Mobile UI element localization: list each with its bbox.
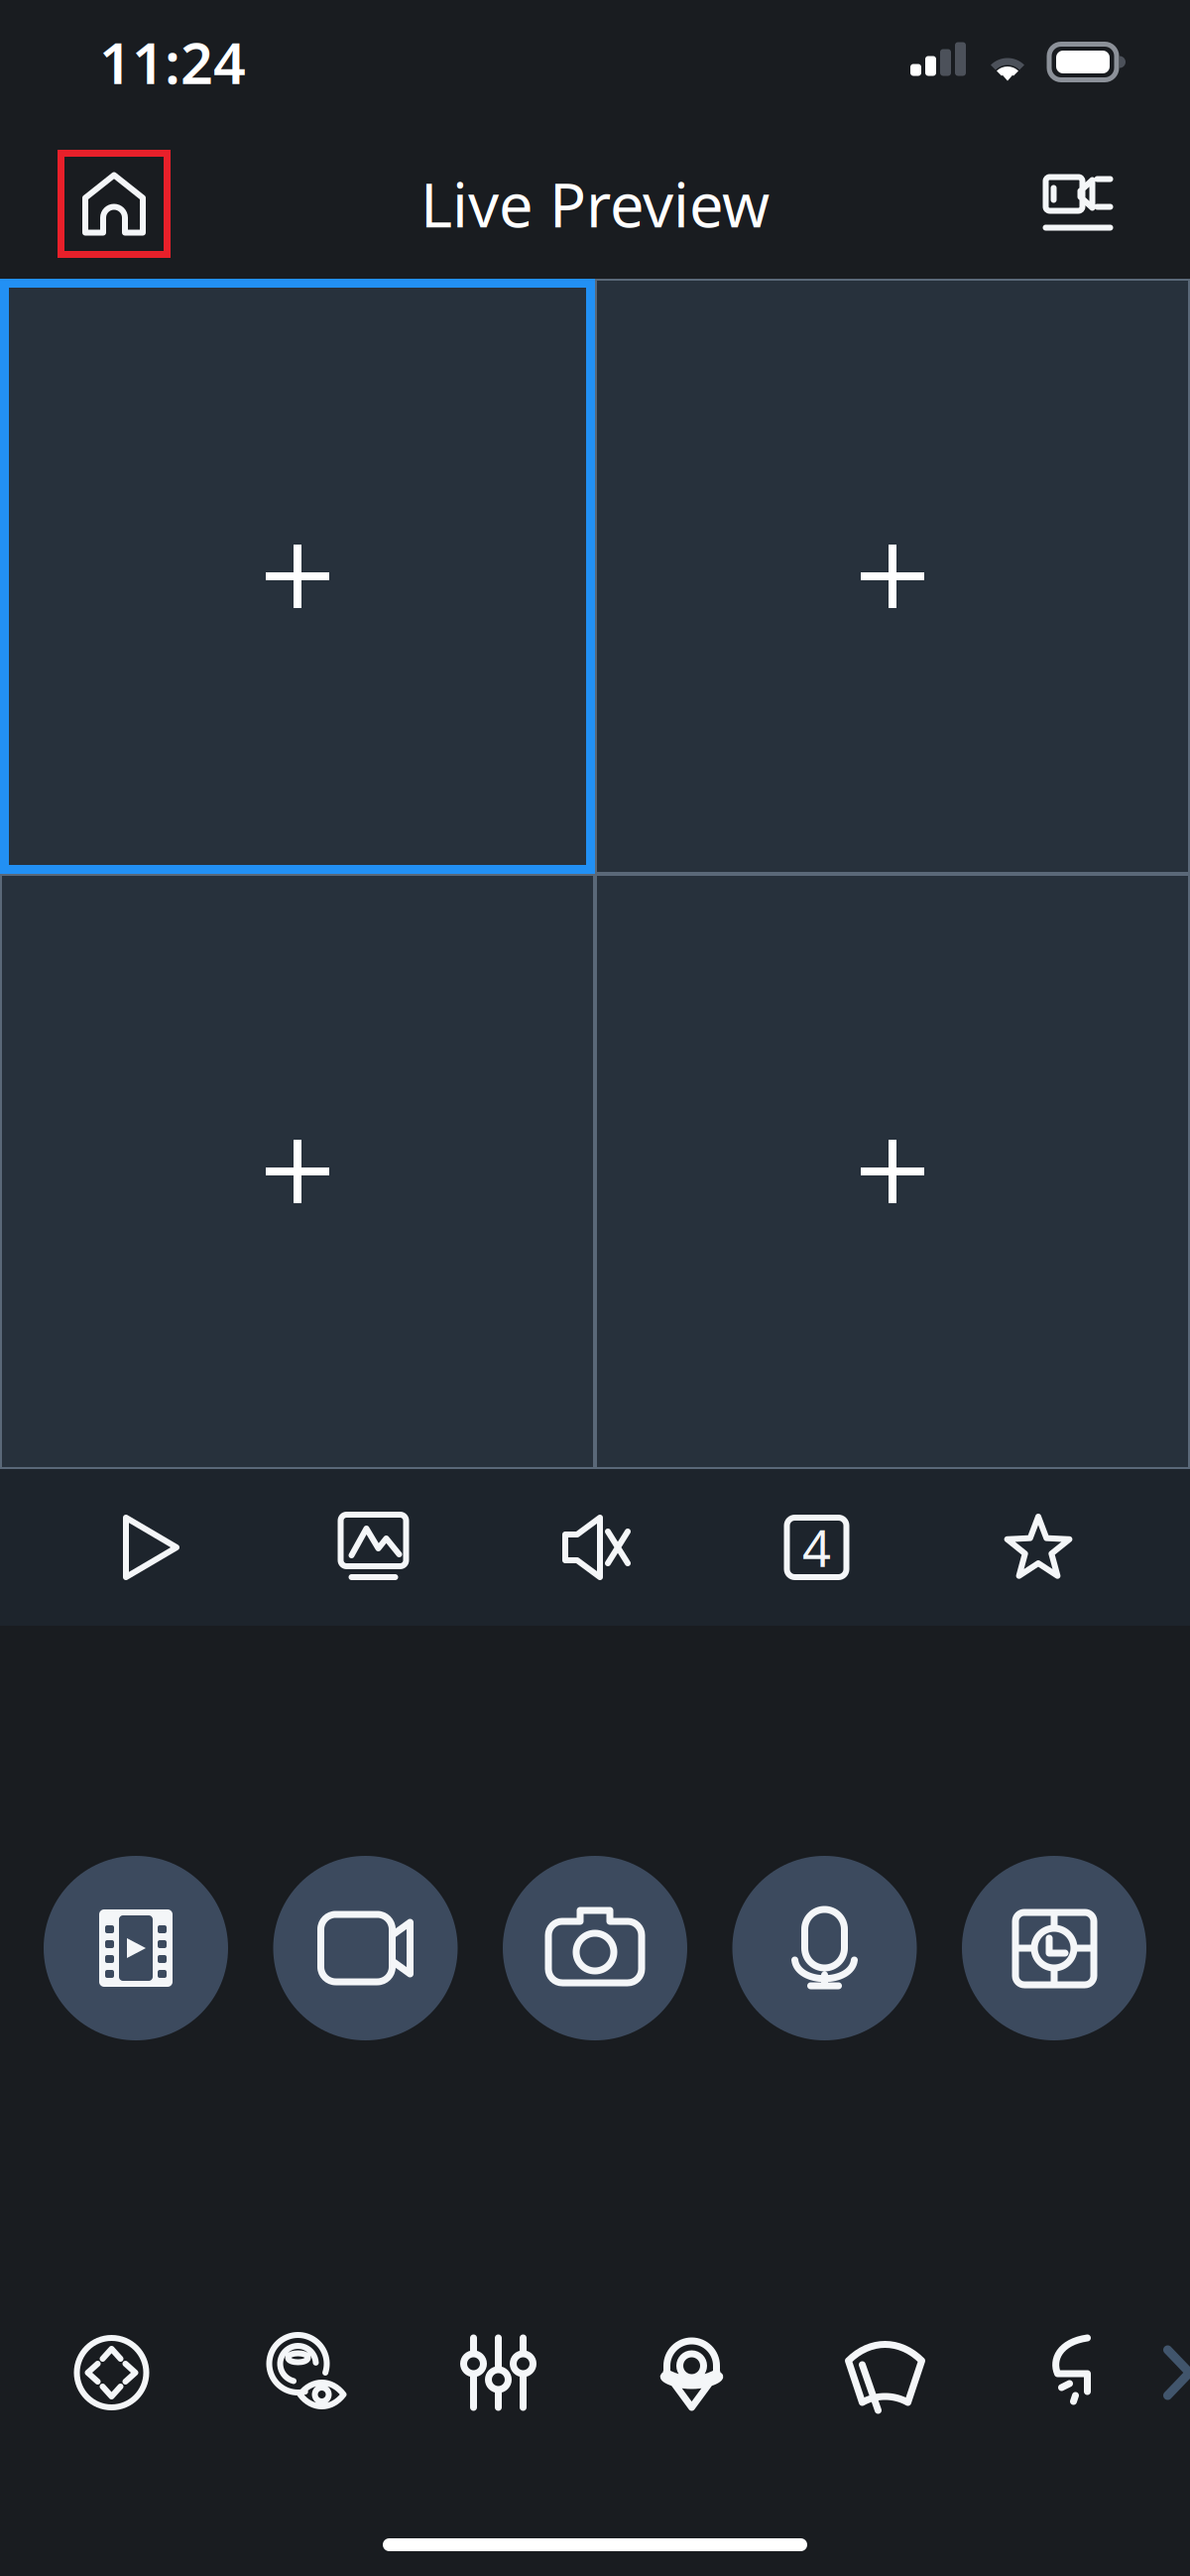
button[interactable]: Camera list	[1023, 150, 1132, 258]
button[interactable]: Image quality	[299, 1469, 448, 1626]
button[interactable]: Mute	[521, 1469, 669, 1626]
button[interactable]: Preset	[617, 2318, 766, 2427]
button[interactable]: Timeline	[962, 1856, 1146, 2040]
button[interactable]: Add camera	[0, 874, 595, 1469]
staticText: 11:24	[99, 24, 246, 100]
button[interactable]: Layout 4	[742, 1469, 891, 1626]
button[interactable]: Talk	[732, 1856, 917, 2040]
button[interactable]: More tools	[1146, 2318, 1190, 2427]
button[interactable]: Recordings	[44, 1856, 228, 2040]
button[interactable]: Video	[273, 1856, 458, 2040]
button[interactable]: Add camera	[595, 279, 1190, 874]
button[interactable]: Add camera	[0, 279, 595, 874]
button[interactable]: Play	[77, 1469, 226, 1626]
staticText: Live Preview	[420, 163, 770, 244]
button[interactable]: Snapshot	[503, 1856, 687, 2040]
button[interactable]: PTZ control	[37, 2318, 186, 2427]
button[interactable]: Favourite	[964, 1469, 1113, 1626]
button[interactable]: Privacy mask	[231, 2318, 379, 2427]
button[interactable]: Image settings	[424, 2318, 573, 2427]
button[interactable]: Add camera	[595, 874, 1190, 1469]
button[interactable]: Wiper	[811, 2318, 959, 2427]
staticText: 4	[802, 1514, 831, 1581]
button[interactable]: Defrost	[1004, 2318, 1153, 2427]
button[interactable]: Home	[58, 150, 171, 258]
